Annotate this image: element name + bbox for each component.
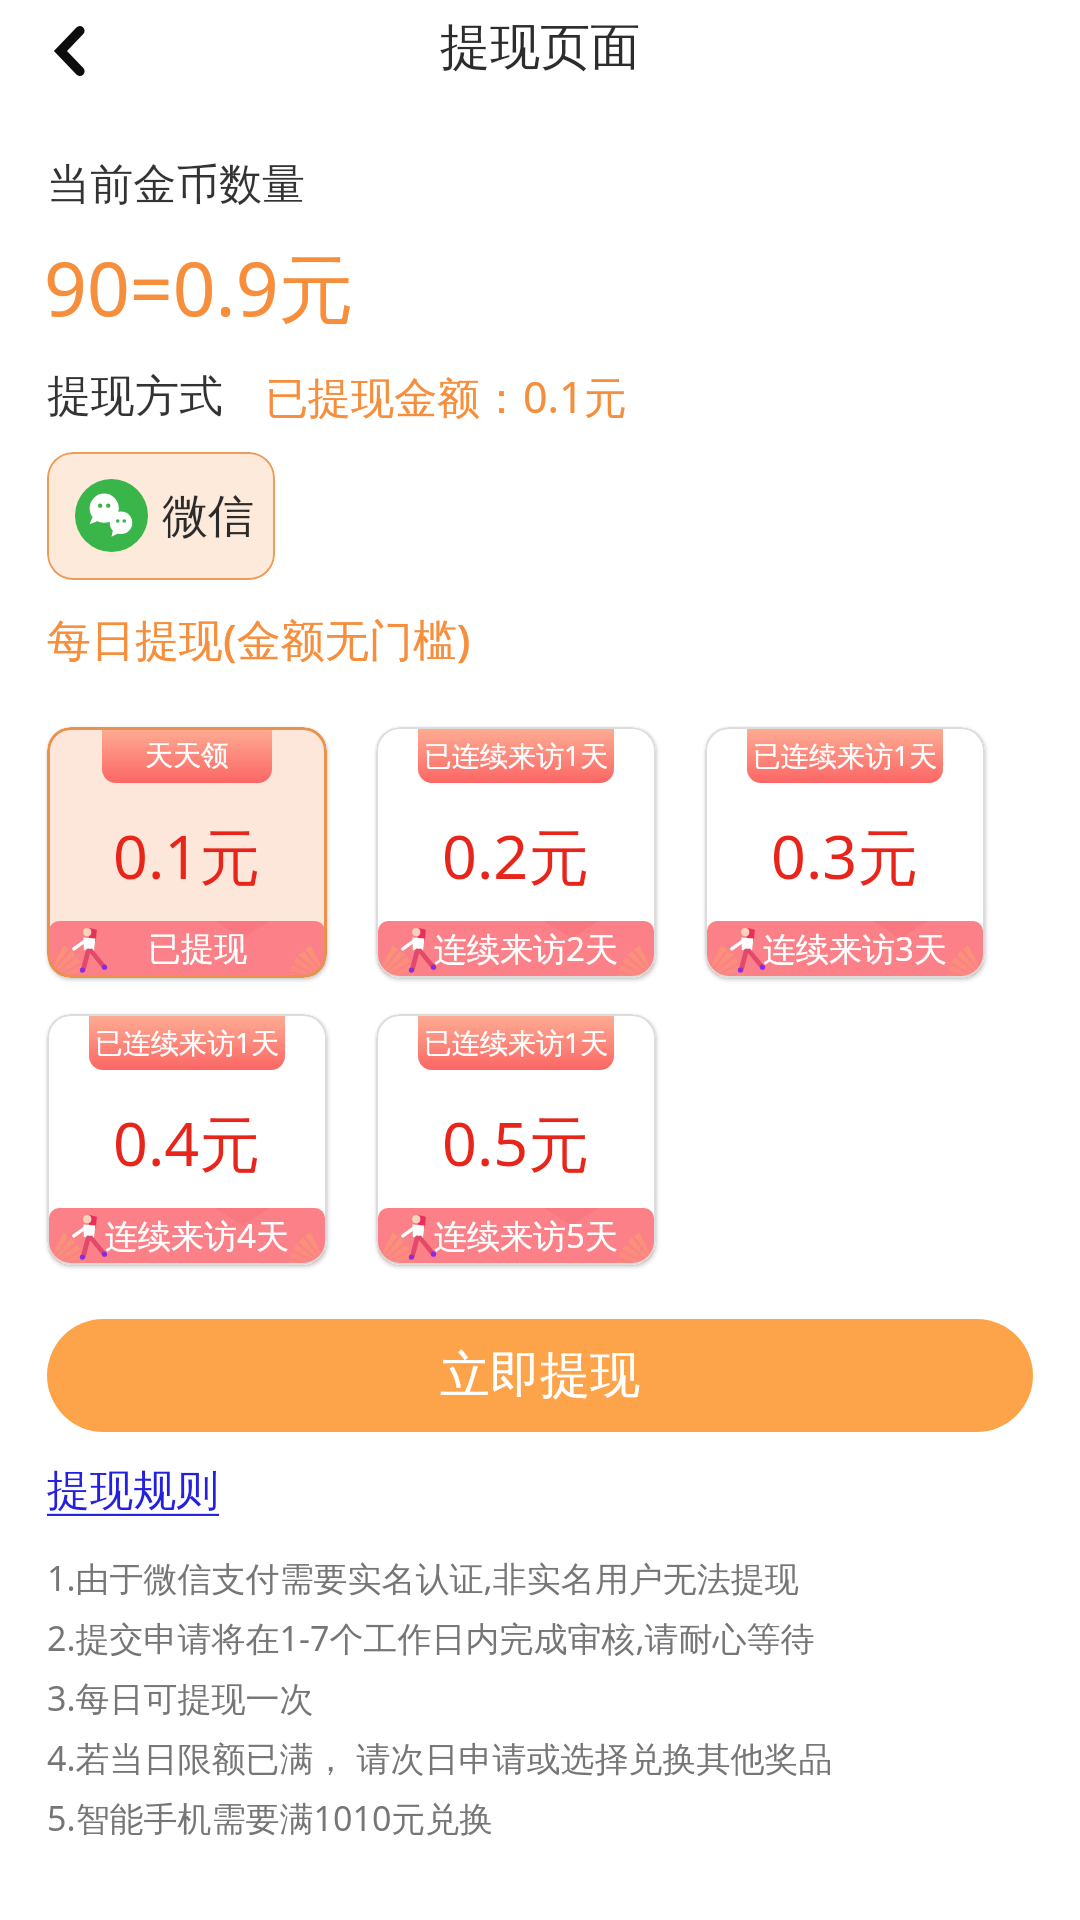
staticText: 5.智能手机需要满1010元兑换 [47, 1795, 494, 1841]
staticText: 已提现金额：0.1元 [265, 367, 627, 426]
staticText: 已连续来访1天 [424, 1023, 609, 1061]
staticText: 连续来访2天 [434, 926, 618, 971]
button[interactable]: 已连续来访1天 [47, 1014, 327, 1265]
staticText: 0.2元 [442, 814, 590, 897]
staticText: 天天领 [145, 738, 229, 773]
staticText: 已连续来访1天 [424, 736, 609, 774]
button[interactable]: 立即提现 [47, 1319, 1033, 1432]
button[interactable]: 已连续来访1天 [376, 727, 656, 978]
button[interactable]: 天天领 [47, 727, 327, 978]
button[interactable]: Back [20, 4, 108, 92]
staticText: 已提现 [148, 928, 247, 970]
staticText: 已连续来访1天 [95, 1023, 280, 1061]
staticText: 立即提现 [440, 1344, 640, 1407]
staticText: 3.每日可提现一次 [47, 1675, 314, 1721]
button[interactable]: 微信 [47, 452, 275, 580]
staticText: 0.3元 [771, 814, 919, 897]
staticText: 每日提现(金额无门槛) [47, 609, 471, 669]
staticText: 提现页面 [0, 16, 1080, 79]
staticText: 连续来访4天 [105, 1213, 289, 1258]
staticText: 微信 [162, 488, 254, 546]
staticText: 4.若当日限额已满， 请次日申请或选择兑换其他奖品 [47, 1735, 833, 1781]
staticText: 连续来访5天 [434, 1213, 618, 1258]
staticText: 已连续来访1天 [753, 736, 938, 774]
staticText: 0.5元 [442, 1101, 590, 1184]
staticText: 0.1元 [113, 814, 261, 897]
staticText: 2.提交申请将在1-7个工作日内完成审核,请耐心等待 [47, 1615, 815, 1661]
button[interactable]: 提现规则 [47, 1464, 219, 1518]
staticText: 1.由于微信支付需要实名认证,非实名用户无法提现 [47, 1555, 799, 1601]
staticText: 90=0.9元 [44, 236, 354, 338]
staticText: 当前金币数量 [47, 158, 305, 212]
button[interactable]: 已连续来访1天 [376, 1014, 656, 1265]
staticText: 连续来访3天 [763, 926, 947, 971]
button[interactable]: 已连续来访1天 [705, 727, 985, 978]
staticText: 0.4元 [113, 1101, 261, 1184]
staticText: 提现方式 [47, 369, 223, 424]
